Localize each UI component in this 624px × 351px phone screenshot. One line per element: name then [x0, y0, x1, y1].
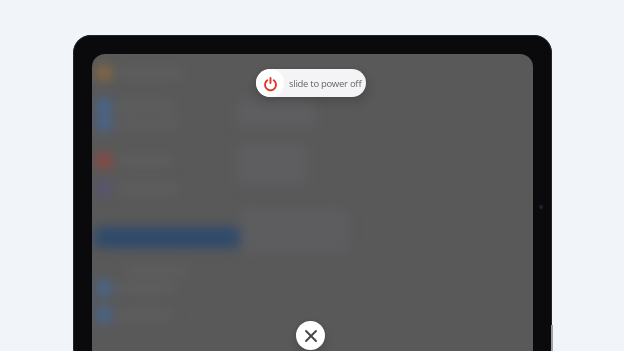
staticText: slide to power off: [289, 77, 362, 90]
button[interactable]: slide to power off: [256, 69, 366, 97]
button[interactable]: [296, 321, 325, 350]
